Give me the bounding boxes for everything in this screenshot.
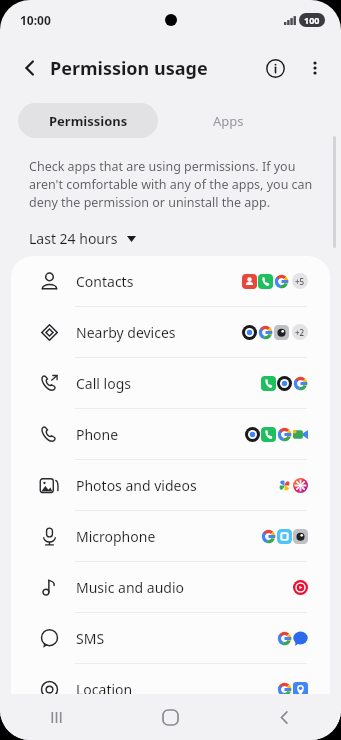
staticText: Microphone bbox=[76, 527, 156, 546]
staticText: Call logs bbox=[76, 374, 131, 393]
staticText: Music and audio bbox=[76, 578, 184, 597]
staticText: SMS bbox=[76, 629, 105, 648]
staticText: Check apps that are using permissions. I… bbox=[29, 158, 317, 211]
button[interactable]: Call logs bbox=[11, 358, 330, 408]
button[interactable]: Permissions bbox=[18, 103, 158, 138]
button[interactable]: Phone bbox=[11, 409, 330, 459]
staticText: +5 bbox=[295, 276, 305, 287]
button[interactable]: Music and audio bbox=[11, 562, 330, 612]
staticText: Nearby devices bbox=[76, 323, 176, 342]
button[interactable]: More options bbox=[295, 48, 335, 88]
button[interactable]: Photos and videos bbox=[11, 460, 330, 510]
staticText: Contacts bbox=[76, 272, 134, 291]
staticText: Last 24 hours bbox=[29, 229, 118, 248]
button[interactable]: Nearby devices bbox=[11, 307, 330, 357]
button[interactable]: Information bbox=[255, 48, 295, 88]
staticText: +2 bbox=[295, 327, 305, 338]
button[interactable]: Microphone bbox=[11, 511, 330, 561]
button[interactable]: Home bbox=[113, 694, 227, 740]
staticText: Permission usage bbox=[50, 56, 208, 81]
button[interactable]: Last 24 hours bbox=[26, 227, 139, 250]
button[interactable]: Contacts bbox=[11, 256, 330, 306]
button[interactable]: Back bbox=[227, 694, 341, 740]
staticText: Photos and videos bbox=[76, 476, 197, 495]
button[interactable]: Location bbox=[11, 664, 330, 714]
staticText: Apps bbox=[213, 112, 244, 130]
staticText: 100 bbox=[304, 14, 320, 26]
staticText: Phone bbox=[76, 425, 119, 444]
staticText: 10:00 bbox=[20, 12, 51, 28]
button[interactable]: SMS bbox=[11, 613, 330, 663]
button[interactable]: Recents bbox=[0, 694, 113, 740]
button[interactable]: Back bbox=[10, 48, 50, 88]
button[interactable]: Apps bbox=[158, 103, 298, 138]
staticText: Location bbox=[76, 680, 133, 699]
staticText: Permissions bbox=[49, 112, 128, 130]
